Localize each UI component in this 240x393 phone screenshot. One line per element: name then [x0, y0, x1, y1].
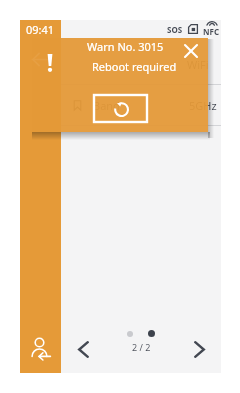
button[interactable]: WiFi — [61, 44, 221, 84]
button[interactable]: Band — [61, 85, 221, 125]
staticText: Reboot required — [92, 59, 177, 74]
button[interactable]: Next page — [185, 335, 213, 363]
button[interactable]: Reboot — [94, 95, 147, 122]
button[interactable]: Back — [29, 48, 51, 70]
button[interactable]: Log out — [29, 335, 53, 363]
staticText: 2 / 2 — [132, 341, 151, 353]
staticText: WiFi — [187, 57, 209, 72]
staticText: 5GHz — [189, 98, 217, 113]
button[interactable]: Previous page — [69, 335, 97, 363]
staticText: NFC — [203, 26, 220, 37]
staticText: 09:41 — [26, 22, 55, 37]
staticText: Band — [93, 98, 120, 113]
staticText: Warn No. 3015 — [87, 39, 164, 54]
staticText: SOS — [167, 24, 183, 35]
button[interactable]: Close — [178, 38, 204, 64]
